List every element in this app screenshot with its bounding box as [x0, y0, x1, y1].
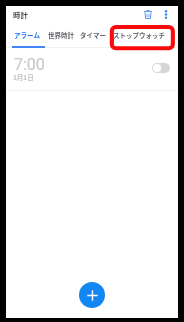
staticText: 世界時計 [48, 30, 74, 39]
button[interactable]: アラーム [10, 23, 43, 46]
staticText: アラーム [14, 30, 40, 39]
staticText: 時計 [13, 9, 28, 20]
button[interactable]: 時計 [9, 3, 69, 25]
staticText: 1月1日 [13, 72, 34, 81]
button[interactable]: ストップウォッチ [110, 23, 167, 46]
button[interactable]: その他のオプション [155, 3, 177, 25]
button[interactable]: アラームのオン/オフ [152, 63, 170, 73]
button[interactable]: 削除 [137, 3, 159, 25]
button[interactable]: アラームを追加 [79, 282, 105, 308]
staticText: ストップウォッチ [113, 30, 165, 39]
button[interactable]: タイマー [76, 23, 109, 46]
button[interactable]: 7:00 [6, 48, 178, 90]
button[interactable]: 世界時計 [44, 23, 77, 46]
staticText: 7:00 [14, 55, 45, 74]
staticText: タイマー [80, 30, 106, 39]
